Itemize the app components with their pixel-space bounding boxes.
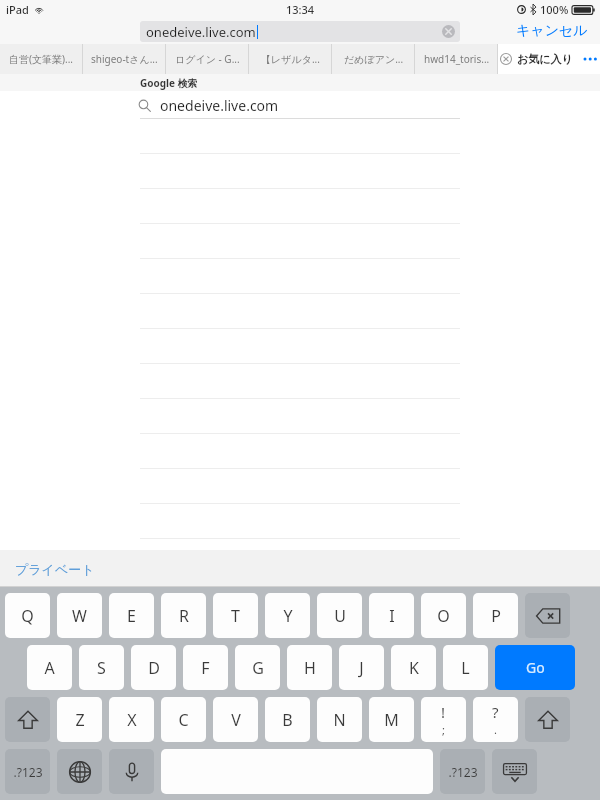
button[interactable]: ! <box>421 697 466 742</box>
button[interactable]: B <box>265 697 310 742</box>
staticText: ログイン - G... <box>175 52 240 66</box>
button[interactable]: T <box>213 593 258 638</box>
button[interactable]: onedeive.live.com <box>140 21 460 42</box>
button[interactable]: 自営(文筆業)... <box>0 44 83 74</box>
staticText: F <box>201 657 210 679</box>
staticText: Google 検索 <box>140 76 198 90</box>
button[interactable]: D <box>131 645 176 690</box>
button[interactable]: K <box>391 645 436 690</box>
staticText: onedeive.live.com <box>160 96 279 115</box>
staticText: キャンセル <box>516 22 588 40</box>
button[interactable]: R <box>161 593 206 638</box>
button[interactable]: S <box>79 645 124 690</box>
button[interactable]: ? <box>473 697 518 742</box>
staticText: shigeo-tさん... <box>91 52 158 66</box>
staticText: iPad <box>6 2 29 17</box>
staticText: .?123 <box>448 764 478 780</box>
button[interactable]: Hide keyboard <box>492 749 537 794</box>
staticText: L <box>461 657 470 679</box>
button[interactable]: J <box>339 645 384 690</box>
staticText: T <box>231 605 240 627</box>
button[interactable]: V <box>213 697 258 742</box>
staticText: M <box>384 709 399 731</box>
button[interactable]: U <box>317 593 362 638</box>
button[interactable]: Switch keyboard language <box>57 749 102 794</box>
staticText: J <box>359 657 364 679</box>
staticText: X <box>127 709 137 731</box>
staticText: E <box>127 605 136 627</box>
button[interactable]: 【レザルタ... <box>249 44 332 74</box>
staticText: ? <box>492 702 499 722</box>
staticText: ; <box>442 722 445 737</box>
button[interactable]: Clear text <box>442 25 455 38</box>
staticText: U <box>334 605 346 627</box>
button[interactable]: .?123 <box>5 749 50 794</box>
staticText: S <box>97 657 106 679</box>
button[interactable]: Shift <box>525 697 570 742</box>
staticText: ! <box>441 702 446 722</box>
staticText: C <box>178 709 189 731</box>
button[interactable]: Backspace <box>525 593 570 638</box>
button[interactable]: ログイン - G... <box>166 44 249 74</box>
staticText: Y <box>283 605 293 627</box>
staticText: R <box>179 605 189 627</box>
button[interactable]: M <box>369 697 414 742</box>
button[interactable]: W <box>57 593 102 638</box>
staticText: G <box>252 657 264 679</box>
button[interactable]: Close tab <box>500 53 512 65</box>
staticText: V <box>231 709 241 731</box>
staticText: W <box>72 605 87 627</box>
button[interactable]: Q <box>5 593 50 638</box>
button[interactable]: L <box>443 645 488 690</box>
button[interactable]: Dictation <box>109 749 154 794</box>
button[interactable]: N <box>317 697 362 742</box>
button[interactable]: onedeive.live.com <box>0 91 600 119</box>
staticText: だめぼアン... <box>344 52 404 66</box>
button[interactable]: X <box>109 697 154 742</box>
button[interactable]: プライベート <box>15 561 95 577</box>
button[interactable]: H <box>287 645 332 690</box>
staticText: I <box>389 605 395 627</box>
staticText: P <box>491 605 501 627</box>
staticText: onedeive.live.com <box>146 23 256 41</box>
staticText: K <box>409 657 419 679</box>
staticText: Go <box>526 658 545 677</box>
button[interactable]: Go <box>495 645 575 690</box>
staticText: 13:34 <box>286 2 315 17</box>
button[interactable]: Shift <box>5 697 50 742</box>
staticText: D <box>148 657 160 679</box>
staticText: .?123 <box>13 764 43 780</box>
button[interactable]: F <box>183 645 228 690</box>
staticText: O <box>437 605 450 627</box>
button[interactable]: C <box>161 697 206 742</box>
staticText: お気に入り <box>517 52 573 66</box>
staticText: H <box>304 657 316 679</box>
button[interactable]: .?123 <box>440 749 485 794</box>
button[interactable]: G <box>235 645 280 690</box>
staticText: 自営(文筆業)... <box>9 52 74 66</box>
staticText: 【レザルタ... <box>261 52 320 66</box>
button[interactable]: More options <box>582 53 598 65</box>
staticText: N <box>333 709 346 731</box>
button[interactable]: E <box>109 593 154 638</box>
staticText: B <box>282 709 293 731</box>
button[interactable]: O <box>421 593 466 638</box>
button[interactable]: キャンセル <box>516 22 588 40</box>
button[interactable]: shigeo-tさん... <box>83 44 166 74</box>
button[interactable]: hwd14_toris... <box>415 44 498 74</box>
staticText: A <box>44 657 55 679</box>
button[interactable]: だめぼアン... <box>332 44 415 74</box>
button[interactable]: Y <box>265 593 310 638</box>
staticText: . <box>494 722 497 737</box>
button[interactable]: P <box>473 593 518 638</box>
staticText: Z <box>75 709 85 731</box>
button[interactable]: A <box>27 645 72 690</box>
staticText: hwd14_toris... <box>424 52 490 66</box>
staticText: 100% <box>540 2 569 17</box>
button[interactable]: I <box>369 593 414 638</box>
button[interactable]: Z <box>57 697 102 742</box>
staticText: Q <box>21 605 34 627</box>
